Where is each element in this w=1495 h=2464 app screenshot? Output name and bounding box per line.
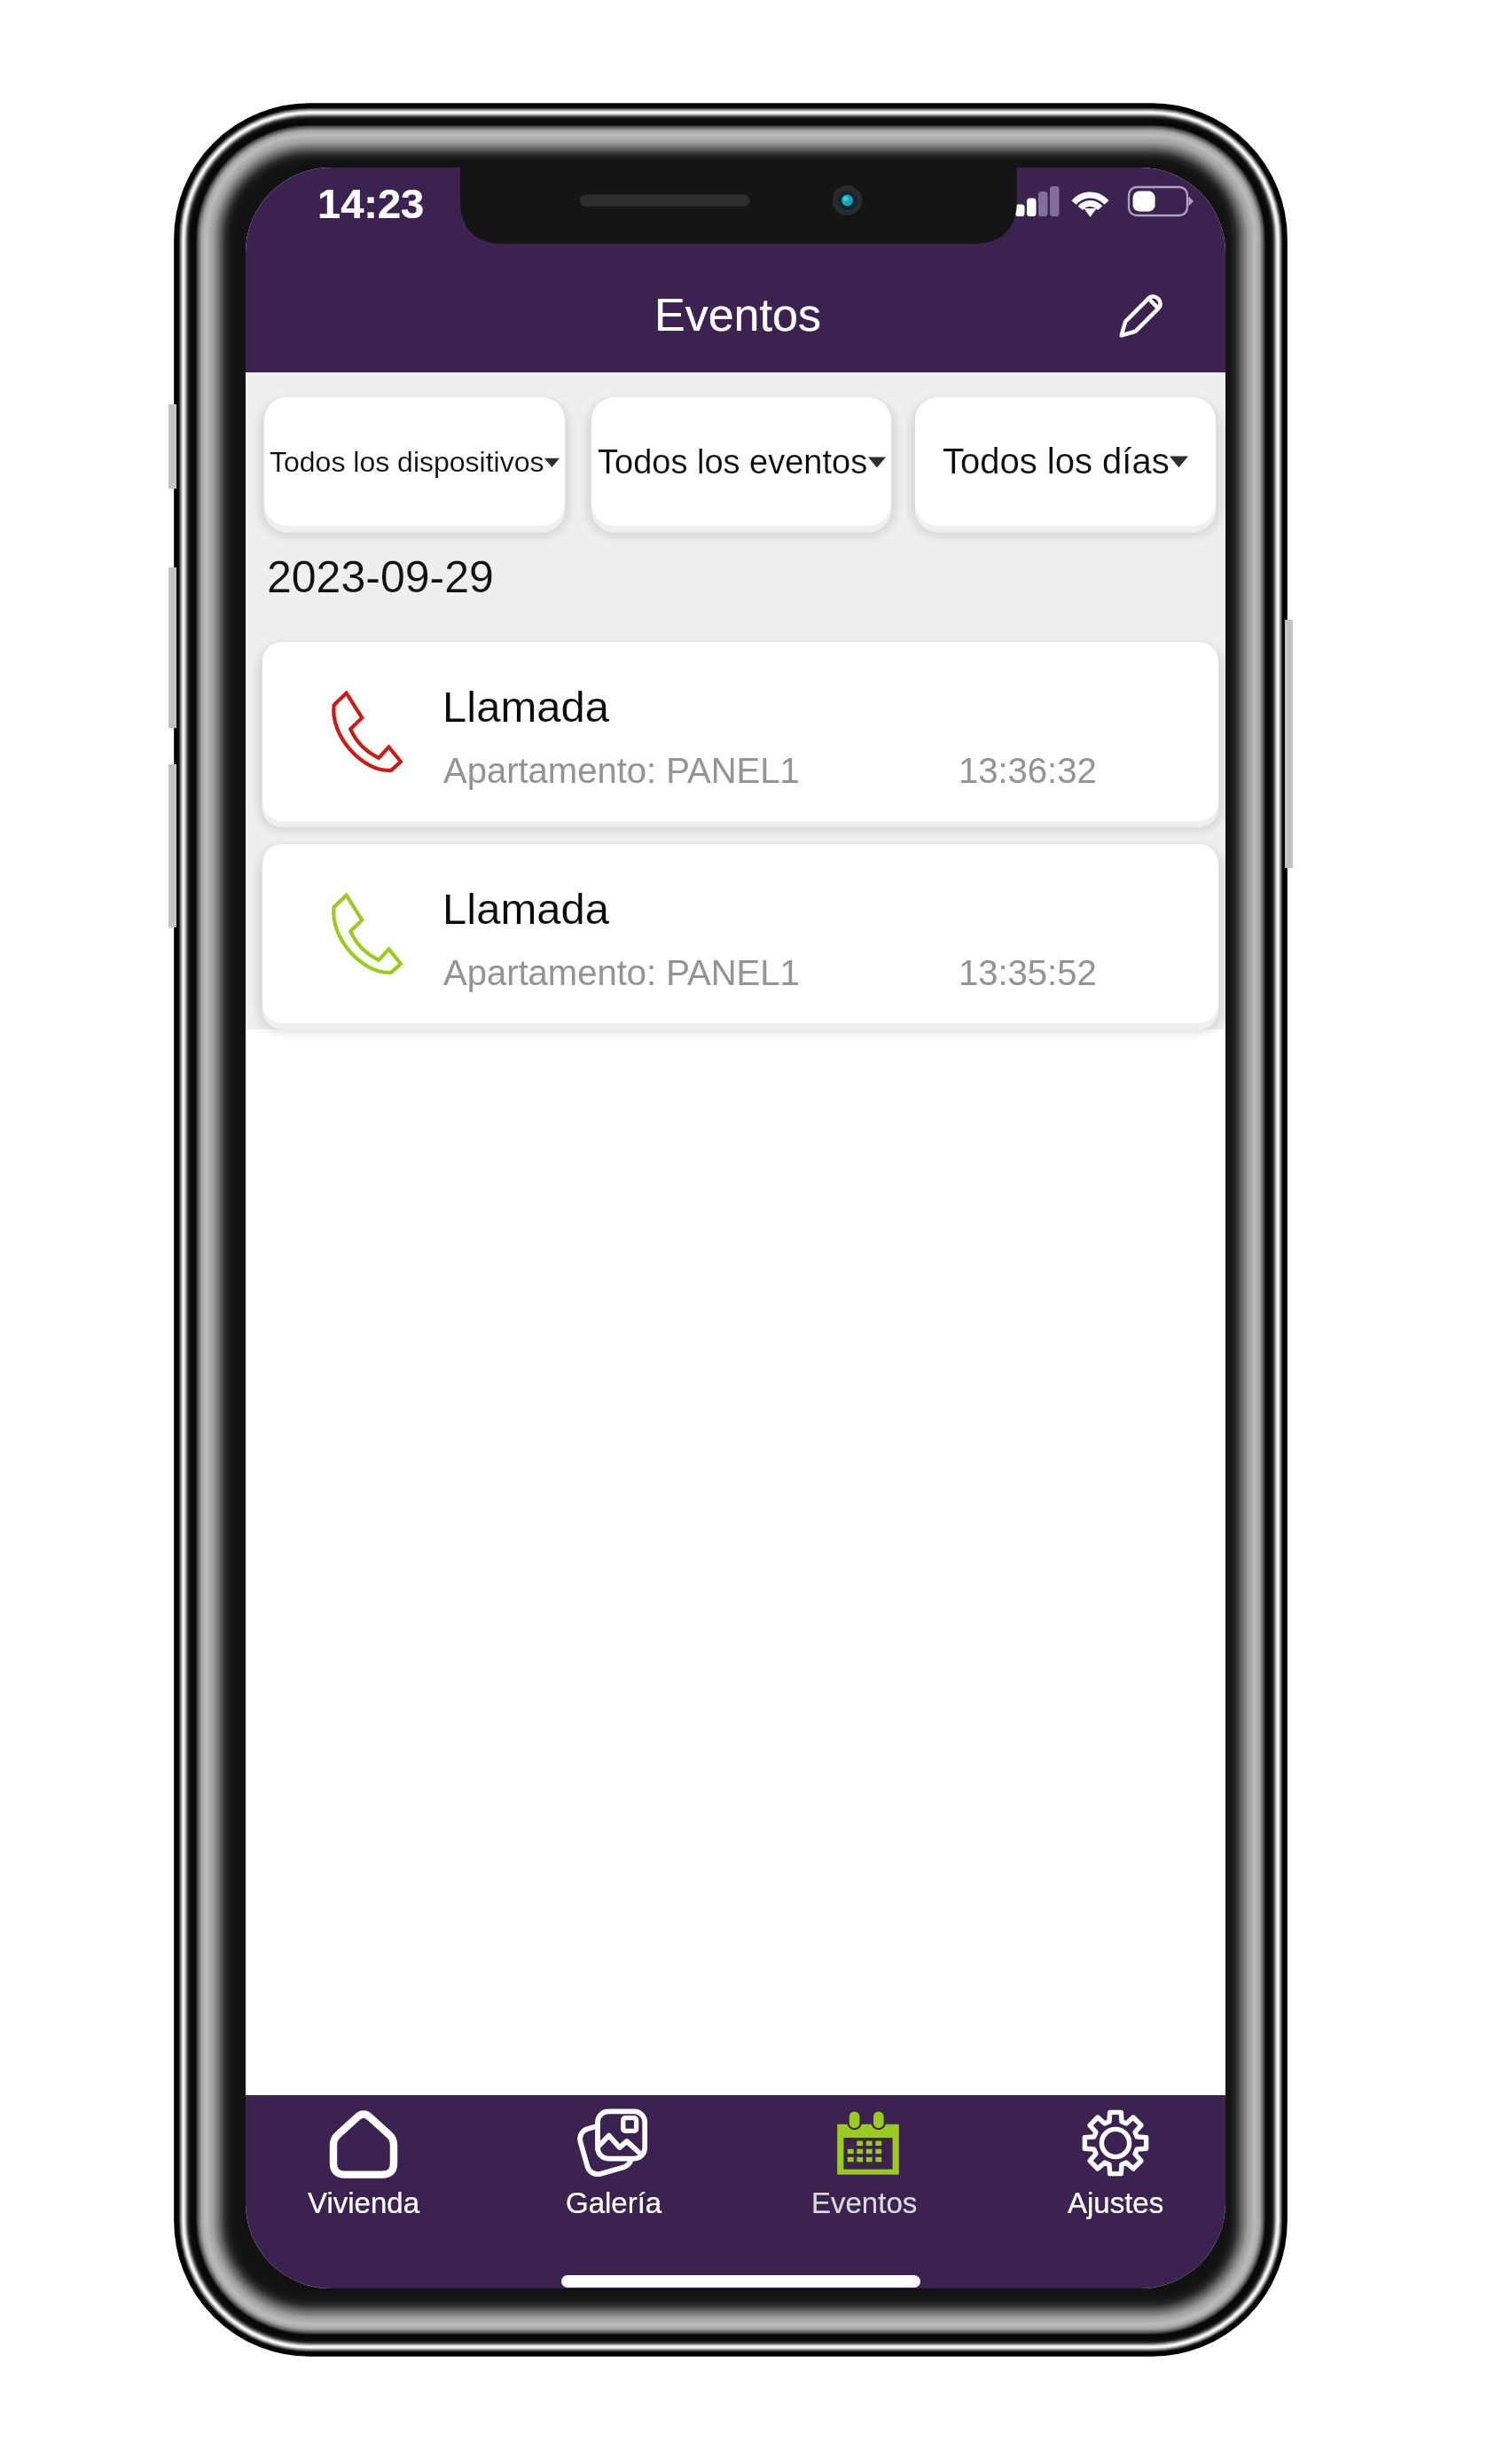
staticText: 13:36:32 — [959, 751, 1097, 791]
button[interactable]: Editar — [1092, 266, 1191, 364]
button[interactable]: Eventos — [754, 2095, 975, 2250]
button[interactable]: Llamada — [262, 642, 1218, 821]
button[interactable]: Todos los eventos — [591, 397, 891, 526]
staticText: Ajustes — [1068, 2186, 1164, 2219]
staticText: Apartamento: PANEL1 — [443, 751, 800, 791]
staticText: Llamada — [442, 885, 609, 934]
button[interactable]: Vivienda — [253, 2095, 474, 2250]
staticText: 2023-09-29 — [267, 552, 494, 602]
staticText: Todos los eventos — [598, 443, 868, 481]
button[interactable]: Galería — [503, 2095, 724, 2250]
button[interactable]: Todos los dispositivos — [264, 397, 565, 526]
staticText: Todos los dispositivos — [270, 446, 544, 478]
staticText: 14:23 — [317, 180, 425, 227]
staticText: 13:35:52 — [959, 953, 1097, 993]
button[interactable]: Todos los días — [915, 397, 1216, 526]
staticText: Todos los días — [943, 442, 1170, 481]
staticText: Eventos — [811, 2186, 918, 2219]
button[interactable]: Ajustes — [1005, 2095, 1225, 2250]
staticText: Apartamento: PANEL1 — [443, 953, 800, 993]
button[interactable]: Llamada — [262, 844, 1218, 1023]
staticText: Vivienda — [308, 2186, 419, 2219]
staticText: Eventos — [654, 289, 821, 340]
staticText: Llamada — [442, 683, 609, 731]
staticText: Galería — [566, 2186, 662, 2219]
